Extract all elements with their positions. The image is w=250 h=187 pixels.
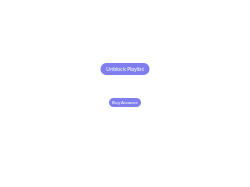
button[interactable]: Unblock Playlist [100,63,149,75]
staticText: Unblock Playlist [106,65,144,73]
staticText: Buy Account [112,100,138,105]
button[interactable]: Buy Account [109,98,141,107]
